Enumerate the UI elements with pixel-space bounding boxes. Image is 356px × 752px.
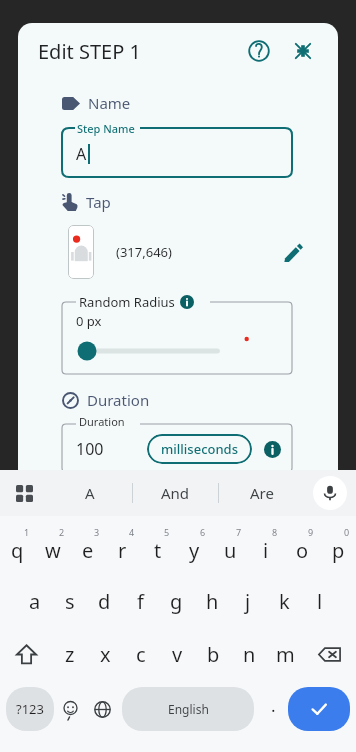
staticText: ?123: [16, 700, 44, 718]
staticText: k: [279, 588, 290, 615]
staticText: w: [45, 537, 61, 564]
button[interactable]: Change language: [86, 687, 118, 731]
button[interactable]: s: [52, 575, 87, 628]
button[interactable]: 2: [35, 522, 70, 575]
button[interactable]: j: [230, 575, 266, 628]
button[interactable]: A: [48, 470, 132, 516]
button[interactable]: a: [17, 575, 52, 628]
button[interactable]: Duration info: [262, 439, 282, 459]
button[interactable]: c: [123, 628, 159, 681]
button[interactable]: Help: [242, 34, 276, 68]
button[interactable]: Toolbar: [0, 470, 48, 516]
staticText: 2: [59, 526, 65, 538]
button[interactable]: b: [195, 628, 231, 681]
staticText: (317,646): [116, 243, 172, 261]
staticText: 3: [94, 526, 100, 538]
staticText: e: [82, 537, 94, 564]
button[interactable]: d: [87, 575, 122, 628]
staticText: 100: [76, 438, 104, 460]
button[interactable]: Collapse: [286, 34, 320, 68]
button[interactable]: 0: [320, 522, 356, 575]
button[interactable]: v: [159, 628, 195, 681]
button[interactable]: 8: [248, 522, 284, 575]
staticText: a: [29, 588, 41, 615]
staticText: Name: [88, 93, 131, 113]
button[interactable]: n: [231, 628, 267, 681]
staticText: i: [263, 537, 269, 564]
staticText: p: [332, 537, 345, 564]
button[interactable]: x: [87, 628, 123, 681]
button[interactable]: 4: [105, 522, 140, 575]
staticText: b: [207, 641, 220, 668]
staticText: u: [224, 537, 237, 564]
staticText: r: [118, 537, 127, 564]
button[interactable]: Random radius info: [180, 295, 194, 309]
button[interactable]: 3: [70, 522, 105, 575]
button[interactable]: 5: [140, 522, 176, 575]
staticText: .: [271, 694, 276, 717]
staticText: Edit STEP 1: [38, 38, 141, 65]
staticText: 7: [236, 526, 242, 538]
staticText: 8: [272, 526, 278, 538]
button[interactable]: Step Name: [62, 121, 292, 177]
staticText: Duration: [79, 414, 125, 429]
button[interactable]: 9: [284, 522, 320, 575]
button[interactable]: 7: [212, 522, 248, 575]
staticText: v: [172, 641, 183, 668]
button[interactable]: Random radius slider: [76, 340, 278, 362]
button[interactable]: z: [52, 628, 87, 681]
staticText: m: [276, 641, 295, 668]
button[interactable]: l: [302, 575, 338, 628]
staticText: f: [137, 588, 144, 615]
button[interactable]: ?123: [6, 687, 54, 731]
button[interactable]: Are: [219, 470, 304, 516]
button[interactable]: f: [122, 575, 158, 628]
staticText: c: [136, 641, 146, 668]
staticText: Tap: [86, 192, 111, 212]
button[interactable]: Tap location preview: [68, 225, 94, 279]
staticText: t: [154, 537, 162, 564]
staticText: 4: [129, 526, 135, 538]
button[interactable]: g: [158, 575, 194, 628]
staticText: g: [170, 588, 183, 615]
button[interactable]: m: [267, 628, 303, 681]
staticText: n: [243, 641, 256, 668]
staticText: A: [85, 483, 95, 503]
button[interactable]: milliseconds: [147, 434, 252, 464]
staticText: y: [189, 537, 200, 564]
staticText: j: [245, 588, 251, 615]
button[interactable]: 6: [176, 522, 212, 575]
staticText: 5: [164, 526, 170, 538]
staticText: And: [161, 483, 190, 503]
staticText: q: [11, 537, 24, 564]
staticText: h: [206, 588, 219, 615]
button[interactable]: Backspace: [303, 628, 356, 681]
staticText: d: [98, 588, 111, 615]
button[interactable]: h: [194, 575, 230, 628]
staticText: 1: [24, 526, 30, 538]
staticText: s: [65, 588, 75, 615]
button[interactable]: k: [266, 575, 302, 628]
button[interactable]: English: [122, 687, 254, 731]
staticText: A: [76, 143, 87, 165]
button[interactable]: Edit tap location: [276, 235, 310, 269]
staticText: 0: [344, 526, 350, 538]
button[interactable]: Emoji: [54, 687, 86, 731]
button[interactable]: 1: [0, 522, 35, 575]
staticText: o: [296, 537, 309, 564]
staticText: Are: [250, 483, 274, 503]
staticText: milliseconds: [161, 440, 238, 458]
staticText: Random Radius: [79, 293, 175, 311]
staticText: Step Name: [77, 121, 135, 136]
button[interactable]: And: [133, 470, 218, 516]
staticText: l: [317, 588, 323, 615]
staticText: 9: [308, 526, 314, 538]
button[interactable]: .: [258, 687, 288, 731]
staticText: English: [168, 701, 209, 717]
staticText: 6: [200, 526, 206, 538]
staticText: z: [65, 641, 75, 668]
button[interactable]: Shift: [0, 628, 52, 681]
staticText: Duration: [87, 390, 150, 410]
button[interactable]: Voice input: [304, 470, 356, 516]
button[interactable]: Enter: [288, 687, 350, 731]
